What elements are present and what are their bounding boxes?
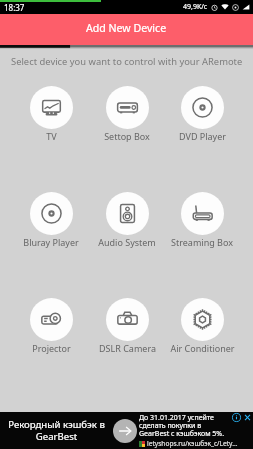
button[interactable]: Рекордный кэшбэк в GearBest <box>0 412 253 449</box>
staticText: Streaming Box <box>171 236 233 248</box>
button[interactable]: DVD Player <box>165 86 239 142</box>
button[interactable]: Projector <box>13 298 89 354</box>
staticText: Air Conditioner <box>170 342 235 354</box>
button[interactable]: Air Conditioner <box>165 298 239 354</box>
button[interactable]: Ad info <box>232 413 241 422</box>
staticText: Bluray Player <box>23 236 79 248</box>
button[interactable]: DSLR Camera <box>89 298 165 354</box>
button[interactable]: Bluray Player <box>13 192 89 248</box>
staticText: DSLR Camera <box>99 342 156 354</box>
button[interactable]: Settop Box <box>89 86 165 142</box>
staticText: letyshops.ru/кэшбэк_c/Lety... <box>147 439 238 448</box>
button[interactable]: TV <box>13 86 89 142</box>
staticText: Рекордный кэшбэк в GearBest <box>0 418 113 442</box>
button[interactable]: Audio System <box>89 192 165 248</box>
staticText: Audio System <box>98 236 156 248</box>
staticText: Add New Device <box>86 21 167 35</box>
staticText: Projector <box>32 342 71 354</box>
staticText: DVD Player <box>179 130 226 142</box>
staticText: TV <box>46 130 57 142</box>
button[interactable]: Close ad <box>243 413 252 422</box>
staticText: До 31.01.2017 успейте сделать покупки в … <box>139 413 231 438</box>
button[interactable]: Open offer <box>113 419 137 443</box>
staticText: 18:37 <box>4 2 25 13</box>
button[interactable]: Streaming Box <box>165 192 239 248</box>
staticText: Select device you want to control with y… <box>11 55 253 68</box>
staticText: Settop Box <box>104 130 150 142</box>
staticText: 49,9K/c <box>183 2 208 12</box>
